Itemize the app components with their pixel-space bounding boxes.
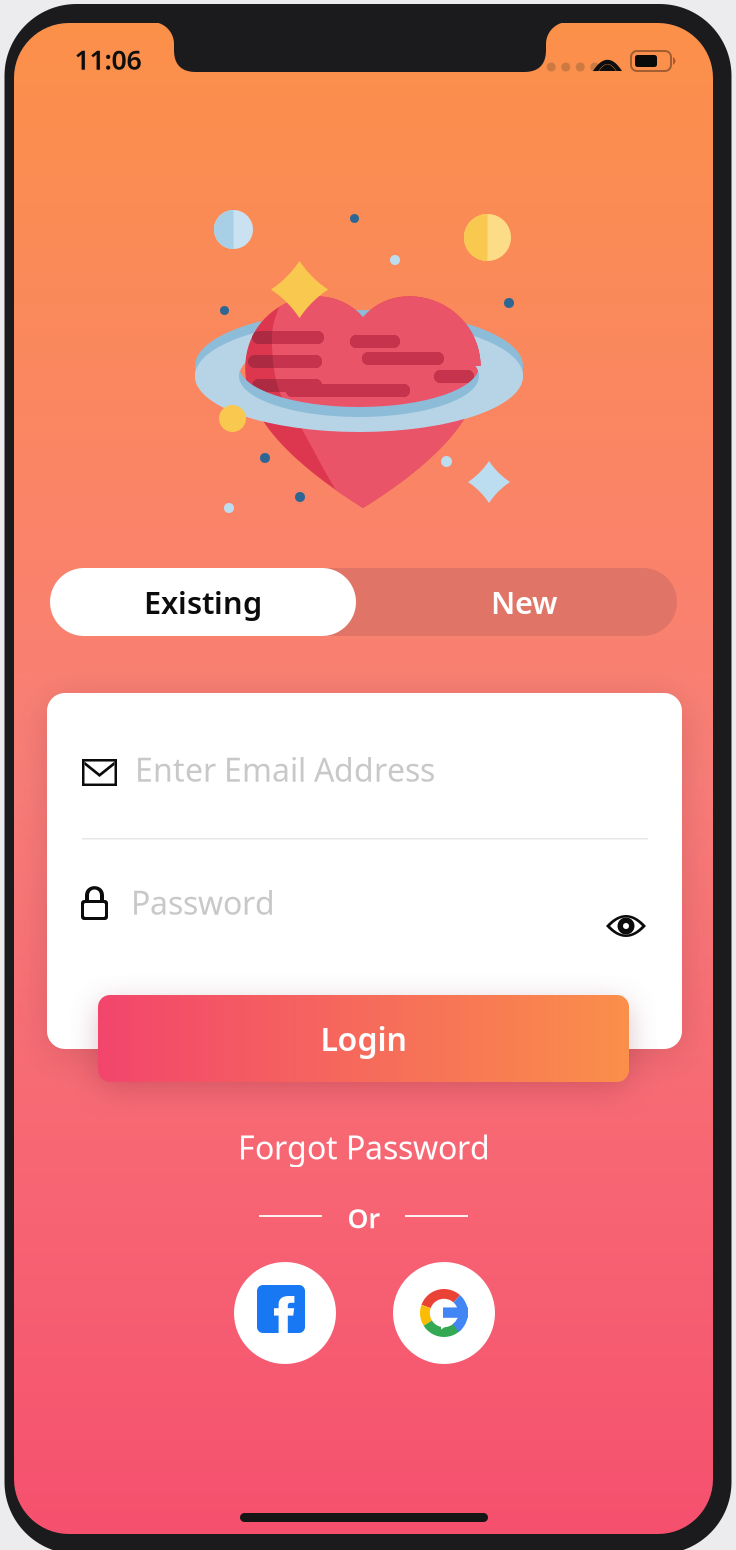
staticText: Forgot Password [238,1126,490,1168]
button[interactable]: Sign in with Google [393,1262,495,1364]
staticText: Or [347,1200,380,1236]
staticText: Password [131,881,275,923]
staticText: Enter Email Address [135,748,435,790]
button[interactable]: Forgot Password [214,1125,514,1169]
staticText: New [491,582,557,622]
staticText: Login [320,1017,406,1060]
staticText: 11:06 [74,42,141,77]
button[interactable]: New [371,568,677,636]
button[interactable]: Show password [606,913,646,939]
staticText: Existing [144,582,262,622]
button[interactable]: Login [98,995,629,1082]
button[interactable]: Sign in with Facebook [234,1262,336,1364]
button[interactable]: Existing [50,568,356,636]
